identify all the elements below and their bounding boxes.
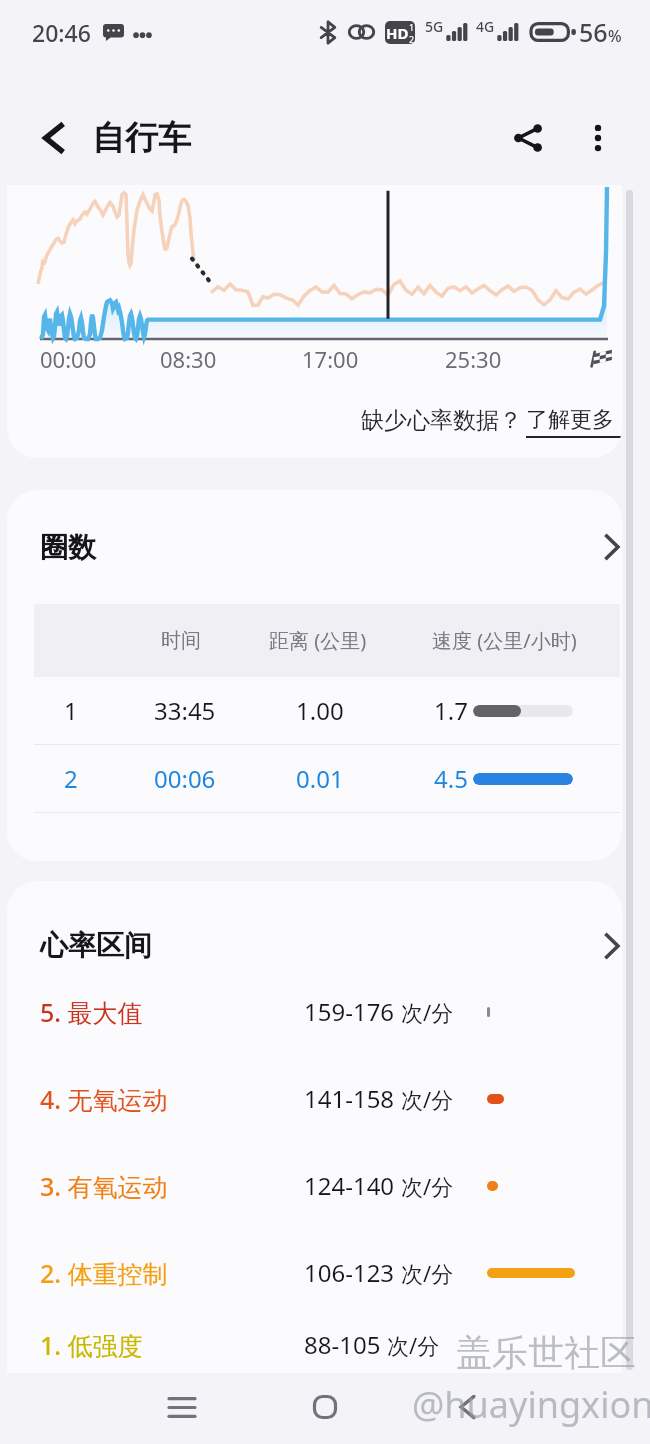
staticText: @huayingxiong bbox=[412, 1380, 650, 1429]
staticText: 1.7 bbox=[434, 694, 468, 727]
button[interactable]: 了解更多 bbox=[526, 406, 622, 438]
button[interactable]: 5. 最大值 bbox=[7, 968, 622, 1055]
button[interactable]: 2 bbox=[7, 745, 622, 812]
staticText: 次/分 bbox=[401, 997, 454, 1027]
staticText: 次/分 bbox=[401, 1171, 454, 1201]
staticText: 速度 (公里/小时) bbox=[432, 627, 577, 654]
staticText: 心率区间 bbox=[40, 928, 152, 963]
staticText: 1. 低强度 bbox=[40, 1328, 143, 1362]
button[interactable]: 圈数 bbox=[7, 490, 622, 604]
staticText: 距离 (公里) bbox=[269, 627, 367, 654]
button[interactable]: 1. 低强度 bbox=[7, 1316, 622, 1373]
staticText: 缺少心率数据？ bbox=[361, 406, 522, 435]
button[interactable]: 4. 无氧运动 bbox=[7, 1055, 622, 1142]
staticText: 次/分 bbox=[387, 1330, 440, 1360]
button[interactable]: Home bbox=[290, 1377, 360, 1437]
staticText: 33:45 bbox=[154, 694, 216, 727]
button[interactable]: 心率区间 bbox=[7, 881, 622, 968]
staticText: 3. 有氧运动 bbox=[40, 1169, 168, 1203]
button[interactable]: 3. 有氧运动 bbox=[7, 1142, 622, 1229]
staticText: 17:00 bbox=[302, 344, 359, 374]
staticText: 5G bbox=[425, 17, 444, 36]
staticText: 5. 最大值 bbox=[40, 995, 143, 1029]
staticText: 了解更多 bbox=[526, 406, 614, 434]
staticText: 盖乐世社区 bbox=[456, 1330, 636, 1375]
staticText: 124-140 bbox=[304, 1169, 395, 1202]
button[interactable]: Back bbox=[432, 1377, 502, 1437]
staticText: 时间 bbox=[161, 628, 201, 653]
staticText: 00:00 bbox=[40, 344, 97, 374]
staticText: 08:30 bbox=[160, 344, 217, 374]
staticText: 1.00 bbox=[296, 694, 344, 727]
button[interactable]: Recents bbox=[147, 1377, 217, 1437]
staticText: 圈数 bbox=[40, 530, 96, 565]
staticText: 25:30 bbox=[445, 344, 502, 374]
staticText: 1 bbox=[409, 21, 415, 33]
staticText: 4. 无氧运动 bbox=[40, 1082, 168, 1116]
staticText: 20:46 bbox=[32, 17, 91, 48]
staticText: 4G bbox=[476, 17, 495, 36]
staticText: 2. 体重控制 bbox=[40, 1256, 168, 1290]
button[interactable]: 1 bbox=[7, 677, 622, 744]
staticText: 1 bbox=[64, 694, 78, 727]
staticText: 自行车 bbox=[92, 117, 191, 159]
button[interactable]: 2. 体重控制 bbox=[7, 1229, 622, 1316]
staticText: 141-158 bbox=[304, 1082, 395, 1115]
staticText: 次/分 bbox=[401, 1258, 454, 1288]
staticText: 0.01 bbox=[296, 762, 344, 795]
button[interactable]: Back bbox=[26, 110, 82, 166]
staticText: 00:06 bbox=[154, 762, 216, 795]
staticText: 2 bbox=[64, 762, 78, 795]
staticText: 4.5 bbox=[434, 762, 468, 795]
staticText: 56 bbox=[579, 15, 608, 49]
staticText: 次/分 bbox=[401, 1084, 454, 1114]
staticText: 106-123 bbox=[304, 1256, 395, 1289]
staticText: 88-105 bbox=[304, 1328, 381, 1361]
staticText: 2 bbox=[409, 33, 415, 44]
staticText: % bbox=[608, 25, 622, 47]
staticText: 159-176 bbox=[304, 995, 395, 1028]
button[interactable]: Share bbox=[497, 107, 559, 169]
staticText: HD bbox=[386, 23, 409, 43]
button[interactable]: More options bbox=[570, 110, 626, 166]
